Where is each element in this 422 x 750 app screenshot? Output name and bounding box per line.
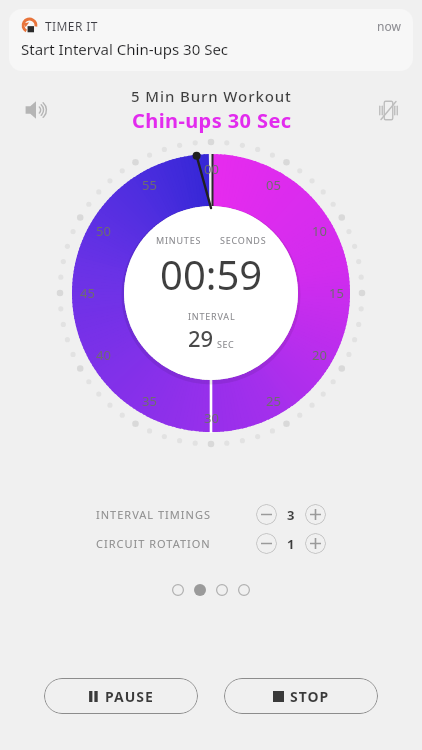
staticText: Chin-ups 30 Sec <box>132 107 292 134</box>
button[interactable]: Sound <box>20 94 52 126</box>
staticText: MINUTES <box>156 234 202 246</box>
staticText: 00 <box>204 160 219 178</box>
button[interactable]: TIMER IT <box>9 9 413 71</box>
button[interactable] <box>194 584 206 596</box>
staticText: 25 <box>266 392 281 410</box>
staticText: Start Interval Chin-ups 30 Sec <box>21 39 229 59</box>
staticText: SEC <box>217 338 235 350</box>
staticText: 20 <box>312 346 327 364</box>
staticText: 40 <box>96 346 111 364</box>
staticText: 3 <box>287 506 295 524</box>
button[interactable]: Increase CIRCUIT ROTATION <box>305 533 326 554</box>
staticText: 50 <box>96 222 111 240</box>
button[interactable]: STOP <box>224 678 378 714</box>
button[interactable]: Vibration off <box>372 94 404 126</box>
staticText: INTERVAL TIMINGS <box>96 507 211 522</box>
staticText: 05 <box>266 176 281 194</box>
staticText: 5 Min Burn Workout <box>131 86 292 106</box>
staticText: 10 <box>312 222 327 240</box>
staticText: PAUSE <box>105 687 154 706</box>
staticText: 1 <box>287 535 295 553</box>
staticText: 30 <box>204 409 219 427</box>
staticText: 55 <box>142 176 157 194</box>
button[interactable] <box>172 584 184 596</box>
staticText: TIMER IT <box>45 18 98 34</box>
button[interactable] <box>216 584 228 596</box>
button[interactable]: Decrease CIRCUIT ROTATION <box>256 533 277 554</box>
staticText: 35 <box>142 392 157 410</box>
button[interactable]: Increase INTERVAL TIMINGS <box>305 504 326 525</box>
staticText: now <box>377 18 401 34</box>
staticText: CIRCUIT ROTATION <box>96 536 211 551</box>
staticText: 15 <box>329 284 344 302</box>
button[interactable]: PAUSE <box>44 678 198 714</box>
staticText: 29 <box>188 323 214 353</box>
button[interactable]: Decrease INTERVAL TIMINGS <box>256 504 277 525</box>
staticText: STOP <box>290 687 330 706</box>
staticText: 45 <box>80 284 95 302</box>
staticText: INTERVAL <box>188 310 236 322</box>
staticText: 00:59 <box>160 247 263 301</box>
staticText: SECONDS <box>220 234 267 246</box>
button[interactable] <box>238 584 250 596</box>
